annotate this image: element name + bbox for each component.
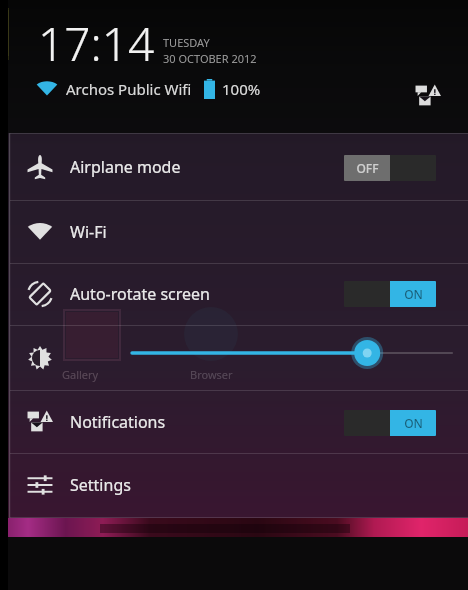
staticText: TUESDAY — [163, 35, 210, 50]
button[interactable]: Notifications — [10, 390, 468, 453]
staticText: 17:14 — [38, 12, 155, 75]
staticText: ON — [404, 415, 423, 431]
staticText: 30 OCTOBER 2012 — [163, 51, 257, 66]
button[interactable]: ON — [344, 410, 436, 436]
staticText: Auto-rotate screen — [70, 283, 210, 305]
staticText: OFF — [356, 160, 379, 176]
staticText: Browser — [190, 367, 233, 382]
button[interactable]: Brightness — [132, 335, 452, 371]
button[interactable]: Notifications — [408, 76, 448, 116]
staticText: Airplane mode — [70, 156, 181, 178]
staticText: Wi-Fi — [70, 221, 107, 243]
staticText: 100% — [222, 79, 261, 99]
button[interactable]: Airplane mode — [10, 133, 468, 200]
staticText: ON — [404, 286, 423, 302]
button[interactable]: Settings — [10, 453, 468, 517]
button[interactable]: Auto-rotate screen — [10, 263, 468, 325]
staticText: Settings — [70, 474, 131, 496]
staticText: Archos Public Wifi — [66, 79, 192, 99]
button[interactable]: OFF — [344, 155, 436, 181]
button[interactable]: ON — [344, 281, 436, 307]
staticText: Gallery — [62, 367, 99, 382]
staticText: Notifications — [70, 411, 166, 433]
button[interactable]: Wi-Fi — [10, 200, 468, 263]
